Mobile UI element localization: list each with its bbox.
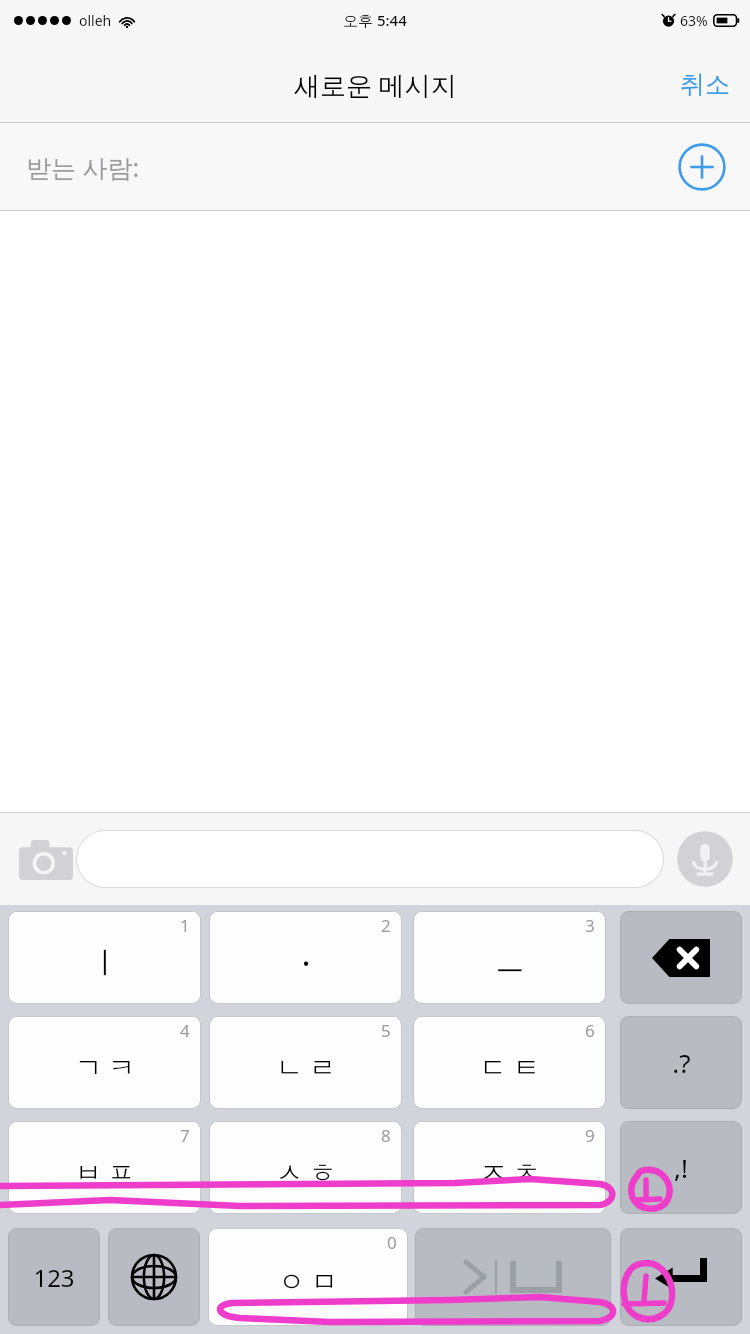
button[interactable]: 2 (209, 911, 402, 1004)
staticText: 받는 사람: (26, 150, 140, 184)
staticText: 오후 5:44 (343, 10, 407, 30)
staticText: ㅡ (495, 944, 525, 982)
other: Backspace (620, 911, 742, 1004)
button[interactable]: 9 (413, 1121, 606, 1214)
staticText: ㅇㅁ (275, 1265, 341, 1299)
button[interactable]: 7 (8, 1121, 201, 1214)
button[interactable]: ,! (620, 1121, 742, 1214)
button[interactable]: 8 (209, 1121, 402, 1214)
staticText: 1 (180, 914, 190, 937)
button[interactable]: 5 (209, 1016, 402, 1109)
staticText: 취소 (680, 69, 730, 100)
button[interactable]: 취소 (660, 57, 750, 112)
other: Space (415, 1228, 611, 1326)
staticText: ㄷㅌ (477, 1051, 543, 1085)
button[interactable]: 123 (8, 1228, 100, 1326)
staticText: 8 (381, 1124, 391, 1147)
button[interactable]: Backspace (620, 911, 742, 1004)
button[interactable]: 3 (413, 911, 606, 1004)
button[interactable]: 받는 사람: (0, 123, 750, 211)
staticText: ㅂㅍ (72, 1156, 138, 1190)
staticText: 4 (180, 1019, 190, 1042)
staticText: 9 (585, 1124, 595, 1147)
staticText: 2 (381, 914, 391, 937)
staticText: 123 (33, 1261, 75, 1294)
button[interactable]: 4 (8, 1016, 201, 1109)
button[interactable]: Dictation (676, 830, 734, 888)
button[interactable]: 1 (8, 911, 201, 1004)
button[interactable]: Switch keyboard language (108, 1228, 200, 1326)
staticText: 6 (585, 1019, 595, 1042)
other: Switch keyboard language (108, 1228, 200, 1326)
staticText: 7 (180, 1124, 190, 1147)
button[interactable]: Add contact (678, 143, 726, 191)
button[interactable]: 0 (208, 1228, 408, 1326)
staticText: ㄴㄹ (273, 1051, 339, 1085)
staticText: ㄱㅋ (72, 1051, 138, 1085)
staticText: ㅅㅎ (273, 1156, 339, 1190)
other: Return (620, 1228, 742, 1326)
button[interactable]: Return (620, 1228, 742, 1326)
button[interactable] (76, 830, 664, 888)
staticText: 새로운 메시지 (294, 67, 457, 103)
staticText: 3 (585, 914, 595, 937)
staticText: .? (672, 1045, 691, 1080)
staticText: 0 (387, 1231, 397, 1254)
button[interactable]: 6 (413, 1016, 606, 1109)
staticText: ,! (674, 1150, 688, 1185)
button[interactable]: Camera (16, 834, 76, 884)
button[interactable]: Space (415, 1228, 611, 1326)
button[interactable]: .? (620, 1016, 742, 1109)
staticText: 5 (381, 1019, 391, 1042)
staticText: olleh (79, 11, 112, 30)
staticText: ㅈㅊ (477, 1156, 543, 1190)
staticText: 63% (680, 11, 708, 30)
staticText: ㅣ (90, 944, 120, 982)
staticText: · (301, 940, 311, 986)
